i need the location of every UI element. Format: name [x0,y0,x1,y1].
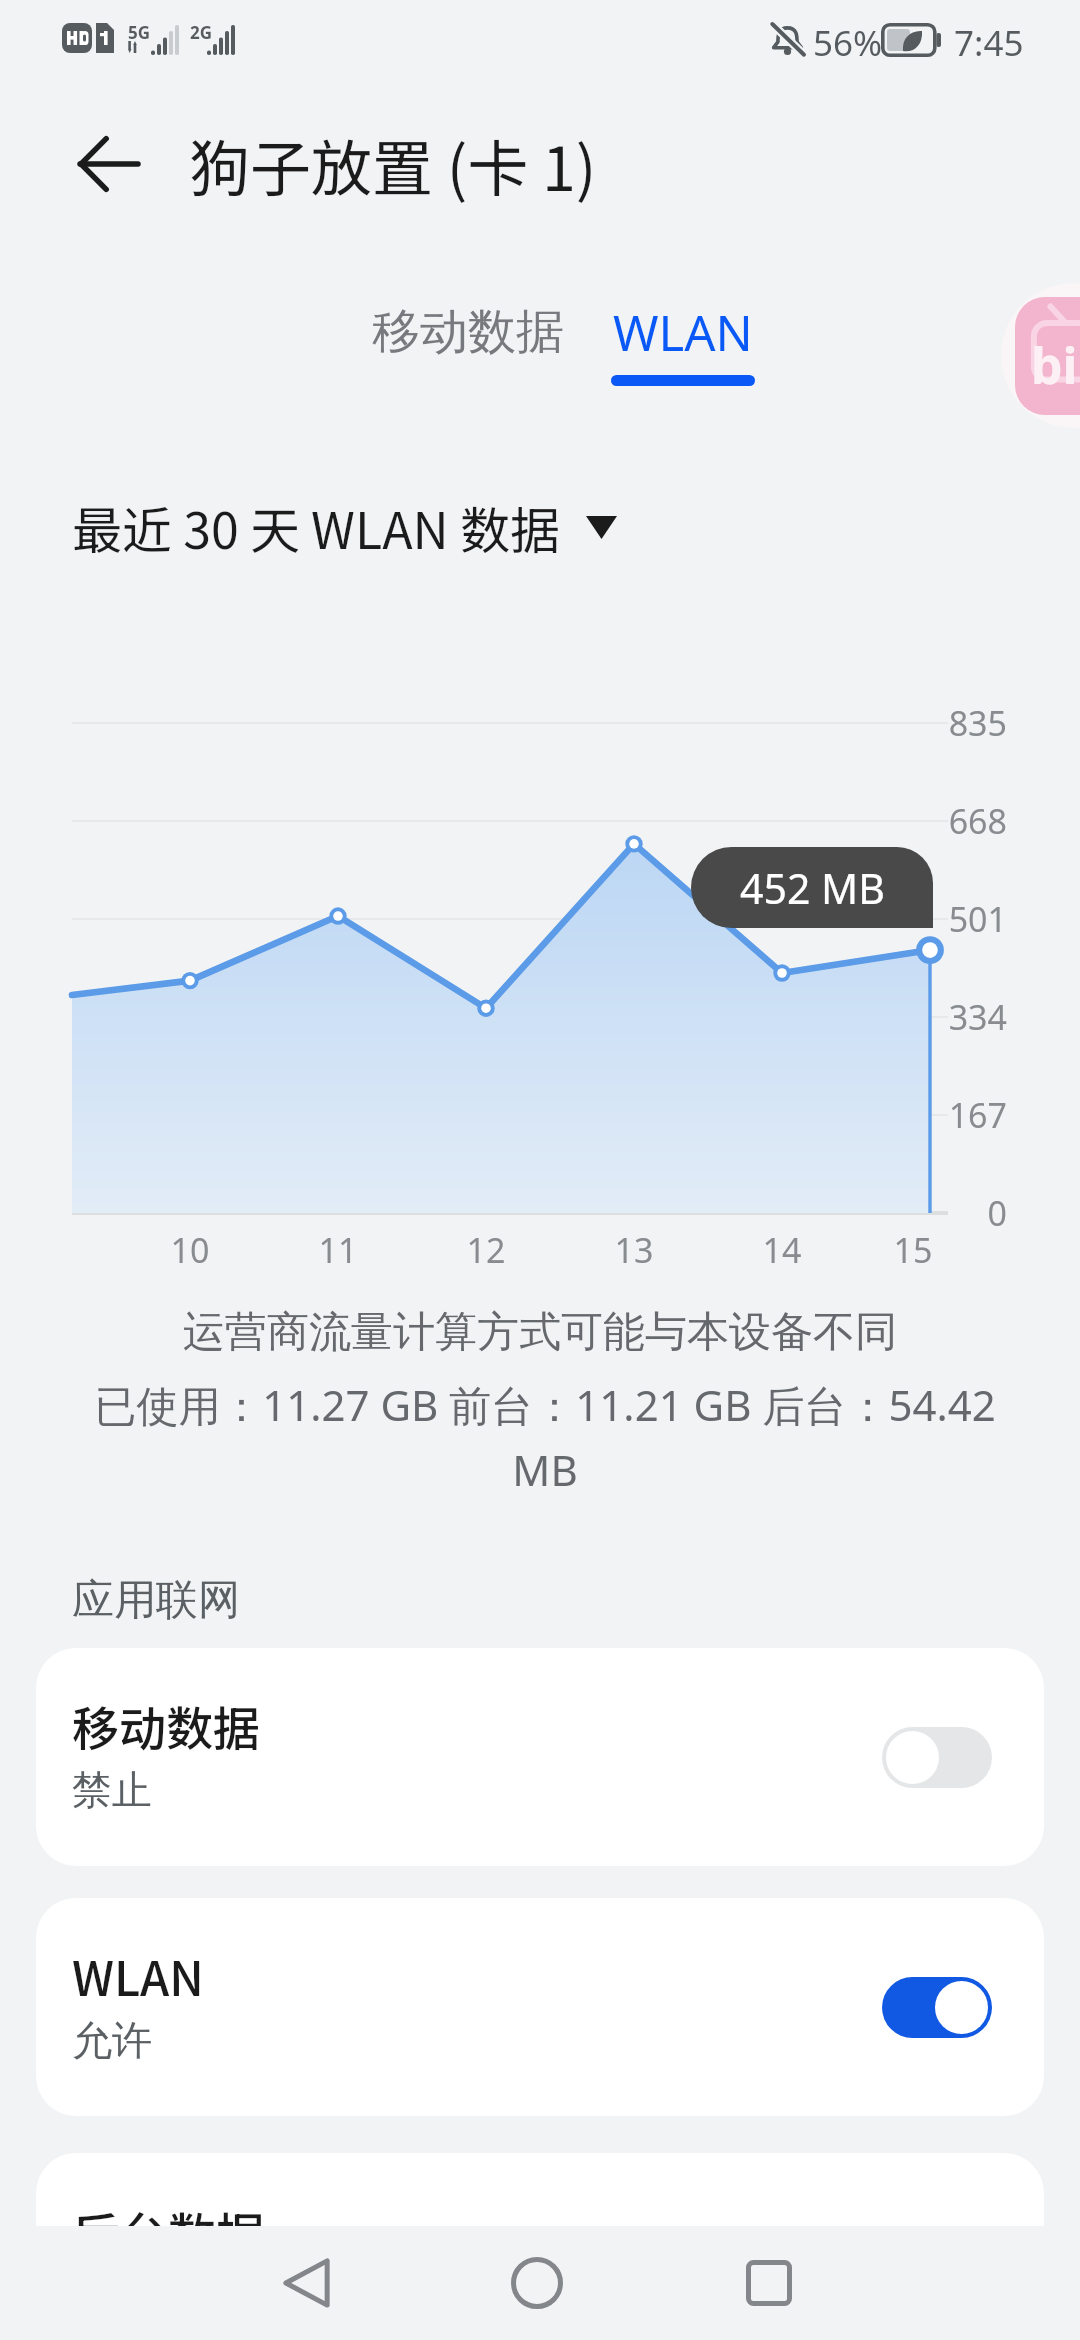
staticText: 移动数据 [372,302,564,362]
staticText: 已使用：11.27 GB 前台：11.21 GB 后台：54.42 MB [80,1376,1010,1498]
button[interactable]: bilibili [1001,283,1080,428]
staticText: 501 [948,896,1007,942]
staticText: 后台数据 [72,2197,265,2226]
button[interactable]: Back [237,2226,377,2340]
staticText: 7:45 [954,19,1024,67]
staticText: 452 MB [740,860,885,916]
staticText: 668 [948,798,1007,844]
button[interactable]: 移动数据 [340,282,595,382]
staticText: 12 [436,1227,536,1273]
button[interactable]: WLAN [36,1898,1044,2116]
staticText: 13 [584,1227,684,1273]
staticText: 11 [288,1227,388,1273]
button[interactable]: Home [467,2226,607,2340]
staticText: 167 [948,1092,1007,1138]
staticText: 15 [863,1227,963,1273]
staticText: 2G [190,21,213,44]
staticText: WLAN [613,299,753,366]
staticText: 10 [140,1227,240,1273]
staticText: 56% [813,19,883,67]
staticText: 运营商流量计算方式可能与本设备不同 [0,1306,1080,1359]
button[interactable]: 移动数据 [36,1648,1044,1866]
button[interactable]: Disabled [882,1727,992,1788]
button[interactable]: 后台数据 [36,2153,1044,2226]
staticText: 狗子放置 (卡 1) [189,120,597,208]
staticText: 14 [732,1227,832,1273]
button[interactable]: 最近 30 天 WLAN 数据 [60,482,629,572]
staticText: 5G [128,21,151,44]
staticText: 0 [987,1190,1007,1236]
staticText: 禁止 [72,1765,152,1815]
staticText: 应用联网 [72,1574,240,1627]
staticText: 移动数据 [72,1691,260,1759]
staticText: 最近 30 天 WLAN 数据 [72,491,560,563]
button[interactable]: Back [58,114,158,214]
staticText: bili [1031,331,1080,399]
staticText: 允许 [72,2015,152,2065]
staticText: 835 [948,700,1007,746]
staticText: WLAN [72,1941,204,2009]
staticText: 334 [948,994,1007,1040]
button[interactable]: Recents [699,2226,839,2340]
button[interactable]: Enabled [882,1977,992,2038]
button[interactable]: WLAN [595,282,770,400]
